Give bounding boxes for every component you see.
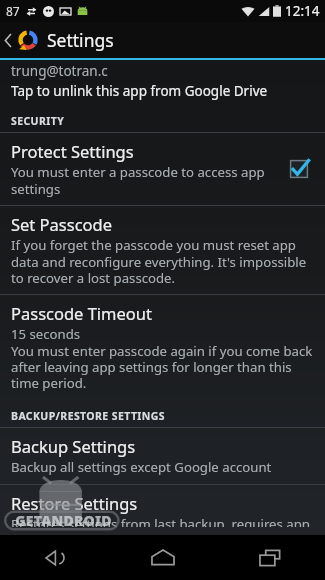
button[interactable]: Set Passcode	[0, 206, 325, 294]
staticText: 15 seconds You must enter passcode again…	[11, 325, 315, 391]
button[interactable]: Restore Settings	[0, 485, 325, 535]
staticText: Protect Settings	[11, 140, 134, 162]
staticText: If you forget the passcode you must rese…	[11, 236, 315, 286]
staticText: Restores settings from last backup, requ…	[11, 515, 315, 527]
staticText: 87	[6, 3, 20, 19]
button[interactable]: Passcode Timeout	[0, 295, 325, 399]
staticText: trung@totran.c	[11, 62, 108, 80]
staticText: Restore Settings	[11, 492, 138, 514]
staticText: Passcode Timeout	[11, 302, 152, 324]
staticText: 12:14	[285, 2, 320, 20]
staticText: Backup all settings except Google accoun…	[11, 458, 272, 476]
staticText: Backup Settings	[11, 435, 136, 457]
staticText: Tap to unlink this app from Google Drive	[11, 82, 268, 100]
button[interactable]: Protect Settings	[0, 133, 325, 205]
button[interactable]: Navigate up	[0, 22, 45, 58]
button[interactable]: trung@totran.c	[0, 62, 325, 100]
staticText: SECURITY	[11, 114, 65, 128]
staticText: You must enter a passcode to access app …	[11, 163, 275, 197]
button[interactable]: Recent apps	[217, 535, 325, 580]
staticText: BACKUP/RESTORE SETTINGS	[11, 409, 165, 423]
button[interactable]: Back	[0, 535, 109, 580]
button[interactable]: Home	[109, 535, 217, 580]
staticText: GETANDROID	[15, 511, 112, 530]
button[interactable]: Protect Settings toggle	[283, 153, 315, 185]
staticText: Settings	[47, 28, 114, 52]
staticText: Set Passcode	[11, 213, 113, 235]
button[interactable]: Backup Settings	[0, 428, 325, 484]
